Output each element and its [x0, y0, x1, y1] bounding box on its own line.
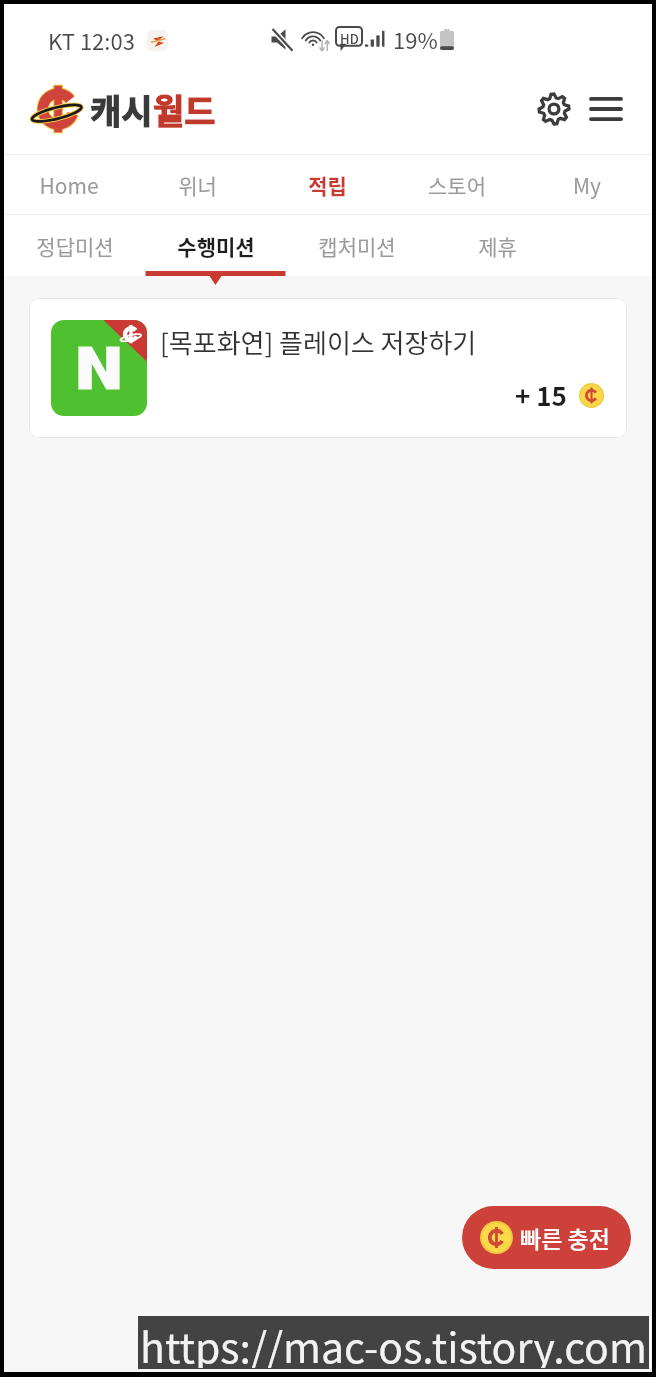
staticText: 빠른 충전 [520, 1221, 610, 1254]
staticText: [목포화연] 플레이스 저장하기 [160, 323, 477, 361]
button[interactable]: 수행미션 [145, 215, 286, 276]
staticText: 캐시 [90, 85, 153, 134]
staticText: https://mac-os.tistory.com [140, 1315, 647, 1368]
button[interactable]: 정답미션 [4, 215, 145, 276]
staticText: 수행미션 [177, 231, 255, 261]
staticText: + 15 [515, 376, 567, 414]
staticText: My [573, 170, 601, 200]
button[interactable]: Settings [530, 85, 578, 133]
staticText: 19% [393, 23, 438, 55]
button[interactable]: Menu [582, 85, 630, 133]
staticText: 캡처미션 [318, 231, 396, 261]
staticText: HD [340, 29, 359, 48]
button[interactable]: [목포화연] 플레이스 저장하기 [29, 298, 627, 438]
button[interactable]: Home [4, 155, 133, 215]
staticText: KT 12:03 [48, 24, 135, 56]
staticText: 스토어 [428, 170, 486, 200]
button[interactable]: 스토어 [392, 155, 522, 215]
staticText: 정답미션 [36, 231, 114, 261]
staticText: 제휴 [478, 231, 517, 261]
button[interactable]: 위너 [133, 155, 262, 215]
button[interactable]: 제휴 [427, 215, 568, 276]
button[interactable]: 빠른 충전 [462, 1206, 631, 1269]
button[interactable]: 적립 [262, 155, 392, 215]
button[interactable]: 캡처미션 [286, 215, 427, 276]
staticText: 적립 [308, 170, 347, 200]
staticText: 위너 [178, 170, 217, 200]
staticText: Home [39, 170, 99, 200]
staticText: 월드 [153, 85, 216, 134]
button[interactable]: My [522, 155, 652, 215]
